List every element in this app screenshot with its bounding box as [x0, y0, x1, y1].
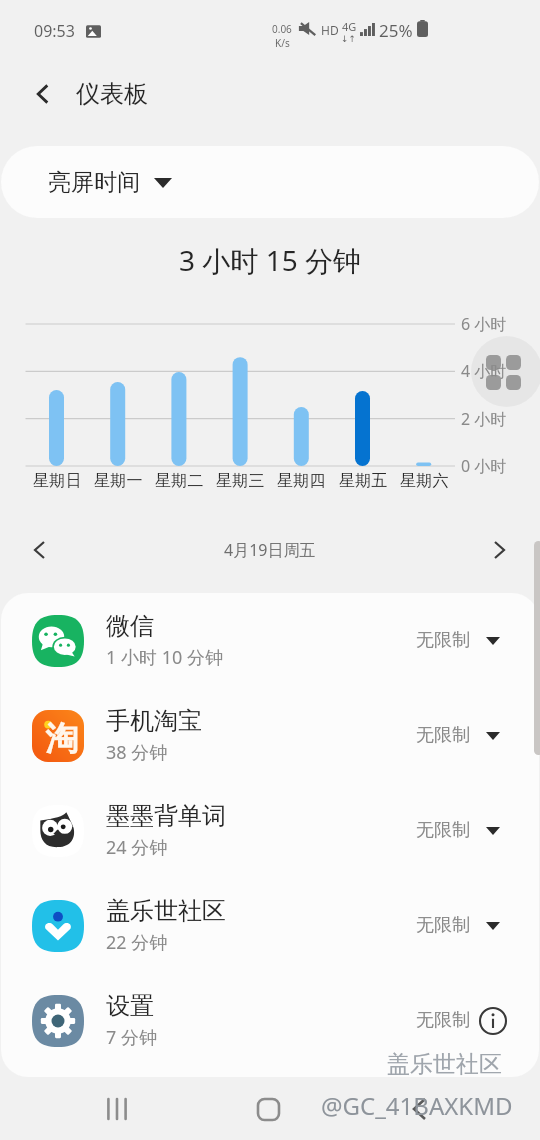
staticText: 星期四 — [277, 471, 326, 491]
staticText: @GC_41BAXKMD — [321, 1089, 513, 1122]
button[interactable]: Recents — [91, 1083, 143, 1135]
staticText: ↓↑ — [341, 34, 357, 44]
staticText: HD — [321, 22, 339, 38]
staticText: 2 小时 — [461, 408, 507, 430]
staticText: 无限制 — [416, 724, 470, 747]
button[interactable]: Back — [22, 73, 64, 115]
staticText: 无限制 — [416, 1009, 470, 1032]
staticText: K/s — [275, 36, 290, 50]
staticText: 无限制 — [416, 629, 470, 652]
staticText: 墨墨背单词 — [106, 801, 226, 831]
staticText: 0.06 — [272, 22, 292, 36]
staticText: 盖乐世社区 — [106, 896, 226, 926]
staticText: 盖乐世社区 — [387, 1050, 502, 1079]
staticText: 星期日 — [33, 471, 82, 491]
button[interactable]: Info — [478, 1006, 508, 1036]
staticText: 24 分钟 — [106, 835, 168, 860]
staticText: 星期五 — [339, 471, 388, 491]
button[interactable]: 盖乐世社区 — [1, 878, 539, 973]
staticText: 无限制 — [416, 819, 470, 842]
staticText: 无限制 — [416, 914, 470, 937]
button[interactable]: Home — [242, 1083, 294, 1135]
staticText: 手机淘宝 — [106, 706, 202, 736]
staticText: 4月19日周五 — [224, 539, 316, 561]
button[interactable]: Expand — [478, 911, 508, 941]
button[interactable]: Expand — [478, 626, 508, 656]
staticText: 25% — [379, 19, 413, 42]
staticText: 星期一 — [94, 471, 143, 491]
button[interactable]: Expand — [478, 816, 508, 846]
button[interactable]: Expand — [478, 721, 508, 751]
staticText: 7 分钟 — [106, 1025, 157, 1050]
staticText: 星期三 — [216, 471, 265, 491]
staticText: 亮屏时间 — [48, 168, 140, 197]
staticText: 6 小时 — [461, 313, 507, 335]
staticText: 仪表板 — [76, 79, 148, 109]
staticText: 3 小时 15 分钟 — [0, 241, 540, 279]
button[interactable]: 设置 — [1, 973, 539, 1068]
staticText: 1 小时 10 分钟 — [106, 645, 223, 670]
staticText: 微信 — [106, 611, 154, 641]
button[interactable]: 墨墨背单词 — [1, 783, 539, 878]
staticText: 星期六 — [400, 471, 449, 491]
button[interactable]: Assistant — [471, 336, 540, 407]
staticText: 淘 — [36, 718, 84, 762]
button[interactable]: 淘 — [1, 688, 539, 783]
staticText: 22 分钟 — [106, 930, 168, 955]
staticText: 星期二 — [155, 471, 204, 491]
staticText: 38 分钟 — [106, 740, 168, 765]
button[interactable]: 亮屏时间 — [1, 146, 539, 218]
staticText: 4G — [342, 19, 357, 34]
staticText: 09:53 — [34, 20, 75, 42]
staticText: 0 小时 — [461, 455, 507, 477]
button[interactable]: 微信 — [1, 593, 539, 688]
staticText: 设置 — [106, 991, 154, 1021]
button[interactable]: Previous day — [21, 532, 57, 568]
button[interactable]: Next day — [481, 532, 517, 568]
staticText: 4 小时 — [461, 360, 507, 382]
button[interactable]: Back — [393, 1083, 445, 1135]
